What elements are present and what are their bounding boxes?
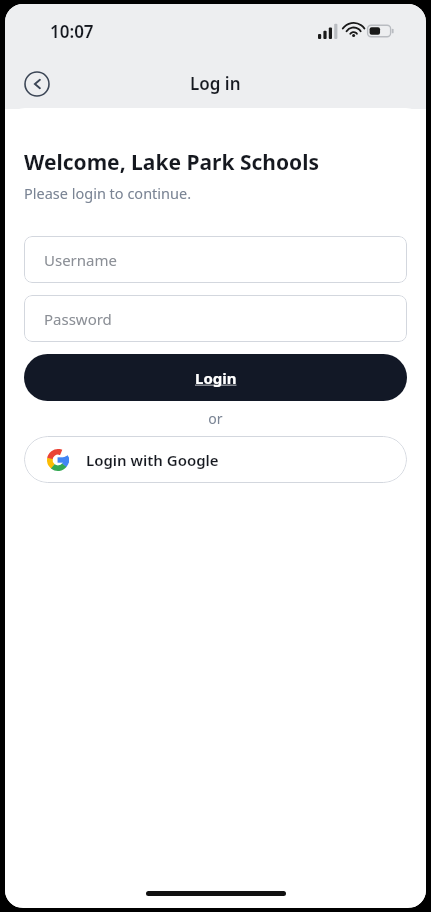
staticText: or [24,409,407,428]
staticText: Login [195,368,237,388]
staticText: Log in [190,72,241,95]
button[interactable]: Login [24,354,407,401]
button[interactable]: Password [24,295,407,342]
staticText: Login with Google [86,450,219,470]
staticText: 10:07 [50,20,94,43]
staticText: Password [44,309,112,329]
staticText: Welcome, Lake Park Schools [24,148,320,177]
button[interactable]: Back [20,67,54,101]
button[interactable]: Login with Google [24,436,407,483]
staticText: Please login to continue. [24,183,192,203]
button[interactable]: Username [24,236,407,283]
staticText: Username [44,250,117,270]
